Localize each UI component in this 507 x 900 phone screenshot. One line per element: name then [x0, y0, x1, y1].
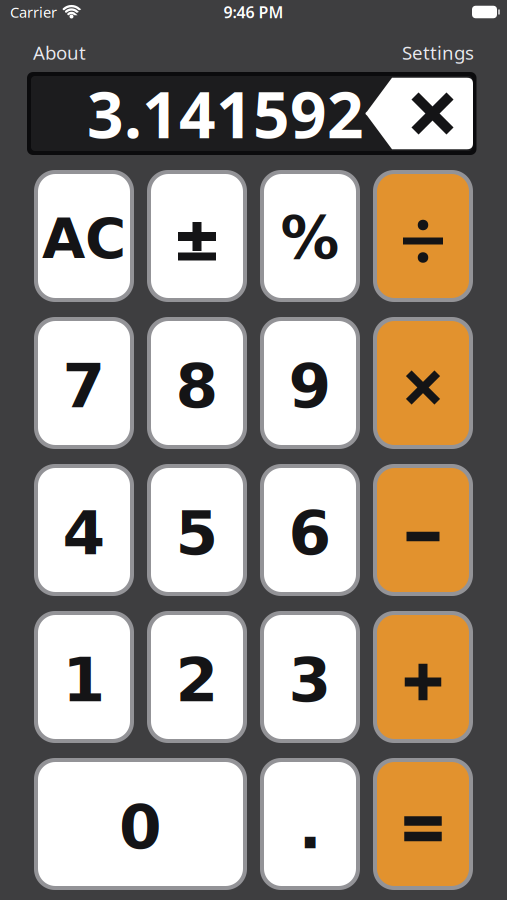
button[interactable]: 2 [147, 611, 247, 743]
button[interactable]: 3 [260, 611, 360, 743]
button[interactable]: Settings [402, 40, 474, 65]
staticText: 3.141592 [87, 71, 364, 156]
button[interactable]: 7 [34, 317, 134, 449]
staticText: 1 [62, 644, 105, 716]
button[interactable]: Plus minus [147, 170, 247, 302]
staticText: About [33, 40, 86, 65]
button[interactable]: Percent [260, 170, 360, 302]
button[interactable]: 4 [34, 464, 134, 596]
staticText: 6 [288, 497, 331, 569]
staticText: 3 [288, 644, 331, 716]
staticText: % [280, 204, 339, 272]
button[interactable]: 9 [260, 317, 360, 449]
staticText: AC [42, 205, 126, 271]
button[interactable]: 8 [147, 317, 247, 449]
staticText: 8 [175, 350, 218, 422]
staticText: 7 [62, 350, 105, 422]
button[interactable]: . [260, 758, 360, 890]
button[interactable]: About [33, 40, 86, 65]
button[interactable]: Equals [373, 758, 473, 890]
staticText: 5 [175, 497, 218, 569]
staticText: . [298, 791, 321, 863]
button[interactable]: Divide [373, 170, 473, 302]
button[interactable]: 1 [34, 611, 134, 743]
staticText: 9 [288, 350, 331, 422]
staticText: 0 [119, 791, 162, 863]
button[interactable]: Plus [373, 611, 473, 743]
staticText: 9:46 PM [223, 1, 283, 23]
staticText: Settings [402, 40, 474, 65]
button[interactable]: Multiply [373, 317, 473, 449]
button[interactable]: 5 [147, 464, 247, 596]
button[interactable]: Delete [364, 78, 473, 149]
staticText: 4 [62, 497, 105, 569]
staticText: Carrier [10, 2, 57, 22]
button[interactable]: 0 [34, 758, 247, 890]
button[interactable]: Minus [373, 464, 473, 596]
button[interactable]: AC [34, 170, 134, 302]
staticText: 2 [175, 644, 218, 716]
button[interactable]: 6 [260, 464, 360, 596]
